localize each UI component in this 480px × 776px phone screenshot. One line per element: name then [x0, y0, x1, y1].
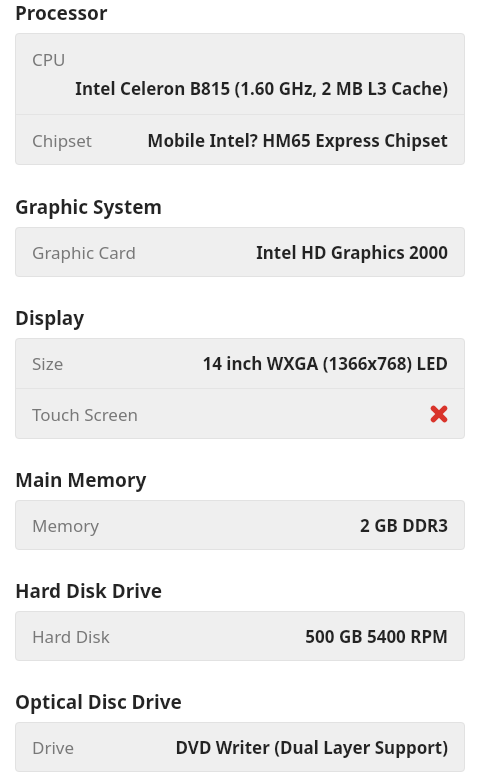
staticText: Drive [32, 736, 75, 759]
staticText: Intel Celeron B815 (1.60 GHz, 2 MB L3 Ca… [32, 77, 448, 100]
staticText: Mobile Intel? HM65 Express Chipset [147, 129, 448, 152]
other: Not supported [430, 405, 448, 423]
staticText: Touch Screen [32, 403, 138, 426]
staticText: Display [15, 305, 85, 331]
button[interactable]: Touch Screen [15, 389, 465, 439]
staticText: 500 GB 5400 RPM [305, 625, 448, 648]
staticText: 14 inch WXGA (1366x768) LED [202, 352, 448, 375]
staticText: Chipset [32, 129, 92, 152]
staticText: Hard Disk [32, 625, 110, 648]
staticText: Intel HD Graphics 2000 [256, 241, 448, 264]
button[interactable]: Chipset [15, 115, 465, 165]
staticText: Optical Disc Drive [15, 689, 182, 715]
staticText: Memory [32, 514, 99, 537]
staticText: Processor [15, 0, 108, 26]
staticText: Main Memory [15, 467, 147, 493]
staticText: DVD Writer (Dual Layer Support) [175, 736, 448, 759]
staticText: Graphic System [15, 194, 163, 220]
staticText: Graphic Card [32, 241, 136, 264]
button[interactable]: Size [15, 338, 465, 388]
staticText: 2 GB DDR3 [360, 514, 448, 537]
button[interactable]: Drive [15, 722, 465, 772]
button[interactable]: Hard Disk [15, 611, 465, 661]
button[interactable]: Memory [15, 500, 465, 550]
staticText: Size [32, 352, 64, 375]
button[interactable]: Graphic Card [15, 227, 465, 277]
button[interactable]: CPU [15, 33, 465, 114]
staticText: CPU [32, 48, 66, 71]
staticText: Hard Disk Drive [15, 578, 163, 604]
